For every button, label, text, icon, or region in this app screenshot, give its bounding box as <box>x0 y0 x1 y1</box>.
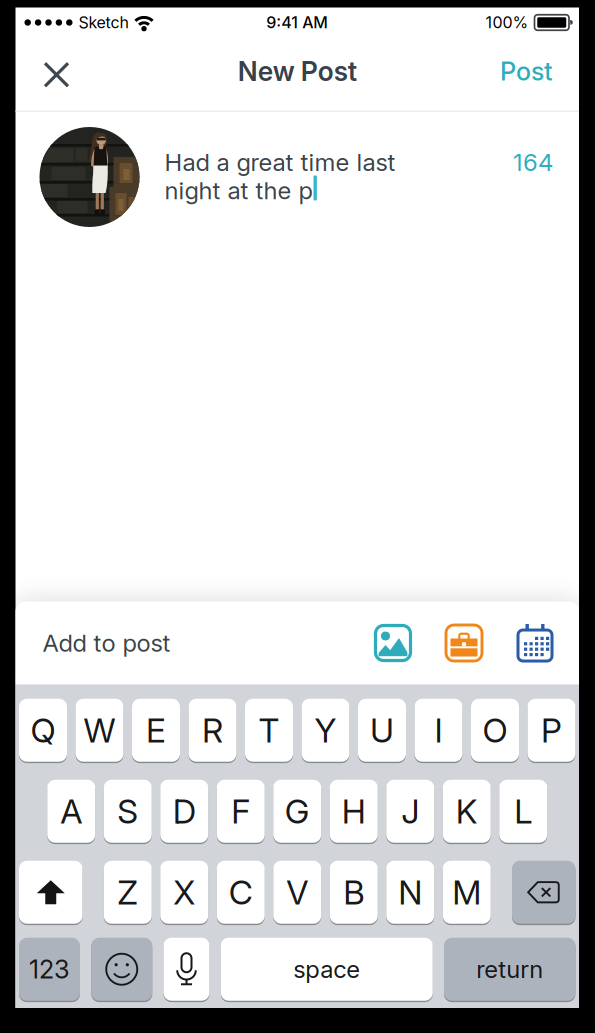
staticText: T <box>258 711 279 750</box>
button[interactable]: return <box>444 938 575 1001</box>
staticText: I <box>434 711 442 750</box>
staticText: K <box>456 792 478 831</box>
staticText: R <box>202 711 223 750</box>
staticText: D <box>173 792 196 831</box>
button[interactable]: R <box>188 699 236 762</box>
button[interactable]: N <box>386 861 434 924</box>
button[interactable]: P <box>527 699 575 762</box>
button[interactable]: L <box>499 780 547 843</box>
button[interactable]: Dictate <box>163 938 209 1001</box>
button[interactable]: H <box>330 780 378 843</box>
button[interactable]: A <box>47 780 95 843</box>
button[interactable]: Delete <box>512 861 575 924</box>
button[interactable]: W <box>75 699 123 762</box>
button[interactable]: O <box>471 699 519 762</box>
staticText: A <box>60 792 82 831</box>
staticText: 100% <box>485 13 528 32</box>
button[interactable]: Shift <box>19 861 82 924</box>
staticText: Post <box>500 56 553 86</box>
button[interactable]: J <box>386 780 434 843</box>
staticText: W <box>83 711 115 750</box>
staticText: M <box>452 873 481 912</box>
button[interactable]: Close <box>15 53 69 97</box>
button[interactable]: Add event <box>516 624 554 662</box>
staticText: Z <box>117 873 138 912</box>
button[interactable]: Add job <box>445 624 483 662</box>
button[interactable]: I <box>414 699 462 762</box>
staticText: return <box>476 955 543 983</box>
button[interactable]: space <box>221 938 433 1001</box>
button[interactable]: Post <box>500 51 579 99</box>
staticText: 123 <box>29 954 70 984</box>
staticText: V <box>286 873 308 912</box>
staticText: S <box>117 792 138 831</box>
button[interactable]: S <box>104 780 152 843</box>
staticText: L <box>514 792 532 831</box>
button[interactable]: X <box>160 861 208 924</box>
button[interactable]: Z <box>104 861 152 924</box>
button[interactable]: V <box>273 861 321 924</box>
staticText: Add to post <box>42 629 170 657</box>
staticText: U <box>370 711 394 750</box>
staticText: X <box>173 873 195 912</box>
staticText: O <box>482 711 507 750</box>
button[interactable]: Q <box>19 699 67 762</box>
staticText: Had a great time last <box>164 148 395 176</box>
button[interactable]: U <box>358 699 406 762</box>
staticText: C <box>229 873 253 912</box>
staticText: H <box>342 792 366 831</box>
button[interactable]: B <box>330 861 378 924</box>
button[interactable]: Emoji <box>91 938 152 1001</box>
button[interactable]: E <box>132 699 180 762</box>
staticText: B <box>343 873 364 912</box>
staticText: N <box>398 873 422 912</box>
staticText: New Post <box>238 55 357 87</box>
staticText: 164 <box>513 148 553 176</box>
staticText: J <box>401 792 419 831</box>
staticText: Y <box>314 711 336 750</box>
button[interactable]: M <box>443 861 491 924</box>
staticText: G <box>285 792 310 831</box>
staticText: P <box>541 711 562 750</box>
staticText: E <box>146 711 166 750</box>
staticText: Sketch <box>78 13 128 32</box>
button[interactable]: F <box>217 780 265 843</box>
button[interactable]: Y <box>301 699 349 762</box>
button[interactable]: K <box>443 780 491 843</box>
button[interactable]: T <box>245 699 293 762</box>
staticText: F <box>231 792 250 831</box>
staticText: Q <box>30 711 55 750</box>
button[interactable]: G <box>273 780 321 843</box>
button[interactable]: D <box>160 780 208 843</box>
button[interactable]: 123 <box>19 938 80 1001</box>
button[interactable]: C <box>217 861 265 924</box>
button[interactable]: Add photo <box>374 624 412 662</box>
staticText: space <box>293 955 360 983</box>
staticText: 9:41 AM <box>266 13 328 32</box>
staticText: night at the p <box>164 176 312 205</box>
